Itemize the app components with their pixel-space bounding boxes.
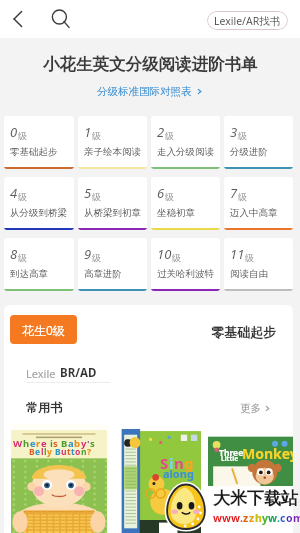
staticText: w bbox=[231, 511, 240, 525]
staticText: w bbox=[213, 511, 222, 525]
staticText: 级 bbox=[92, 130, 101, 141]
staticText: 0 bbox=[10, 123, 18, 141]
staticText: Little bbox=[221, 454, 239, 463]
staticText: 走入分级阅读 bbox=[157, 146, 214, 158]
staticText: 级 bbox=[165, 130, 174, 141]
button[interactable]: Back bbox=[4, 5, 32, 33]
staticText: l bbox=[44, 446, 47, 458]
staticText: 10 bbox=[157, 245, 172, 263]
button[interactable]: 5 bbox=[78, 177, 147, 230]
staticText: Lexile bbox=[26, 366, 56, 381]
staticText: i bbox=[169, 453, 174, 473]
staticText: 零基础起步 bbox=[211, 324, 276, 340]
staticText: 级 bbox=[92, 191, 101, 202]
staticText: ? bbox=[87, 446, 92, 458]
staticText: 级 bbox=[165, 191, 174, 202]
button[interactable]: 10 bbox=[151, 238, 220, 291]
staticText: 坐稳初章 bbox=[157, 207, 195, 219]
staticText: 9 bbox=[84, 245, 92, 263]
staticText: 级 bbox=[245, 252, 254, 263]
staticText: y bbox=[262, 511, 268, 525]
staticText: 级 bbox=[18, 252, 27, 263]
staticText: 小花生英文分级阅读进阶书单 bbox=[43, 54, 258, 75]
staticText: . bbox=[277, 511, 280, 525]
staticText: z bbox=[249, 511, 255, 525]
staticText: ' bbox=[87, 437, 90, 450]
staticText: 级 bbox=[172, 252, 181, 263]
button[interactable]: S bbox=[117, 429, 201, 533]
staticText bbox=[52, 446, 55, 458]
staticText: B bbox=[61, 437, 68, 450]
staticText: 5 bbox=[84, 184, 92, 202]
staticText: 级 bbox=[238, 130, 247, 141]
button[interactable]: 1 bbox=[78, 116, 147, 169]
staticText: 分级进阶 bbox=[230, 146, 268, 158]
button[interactable]: W bbox=[11, 424, 107, 533]
staticText: a bbox=[68, 437, 74, 450]
button[interactable]: 花生0级 bbox=[10, 315, 77, 344]
staticText: y bbox=[47, 446, 52, 458]
staticText: along bbox=[163, 466, 194, 481]
staticText: 到达高章 bbox=[10, 268, 48, 280]
staticText: 级 bbox=[92, 252, 101, 263]
staticText: m bbox=[293, 511, 300, 525]
staticText: e bbox=[30, 437, 36, 450]
staticText: 3 bbox=[230, 123, 238, 141]
staticText: z bbox=[243, 511, 249, 525]
staticText: s bbox=[53, 437, 58, 450]
staticText: 1 bbox=[84, 123, 92, 141]
button[interactable]: 0 bbox=[4, 116, 74, 169]
staticText: 7 bbox=[230, 184, 238, 202]
button[interactable]: Three bbox=[208, 435, 293, 533]
staticText: y bbox=[81, 437, 87, 450]
staticText: Lexile/AR找书 bbox=[214, 14, 281, 28]
staticText: 过关哈利波特 bbox=[157, 268, 214, 280]
staticText: b bbox=[74, 437, 81, 450]
button[interactable]: 3 bbox=[224, 116, 293, 169]
staticText: 级 bbox=[238, 191, 247, 202]
staticText: S bbox=[160, 453, 169, 473]
staticText: 花生0级 bbox=[22, 322, 65, 338]
staticText: 6 bbox=[157, 184, 165, 202]
button[interactable]: 7 bbox=[224, 177, 293, 230]
staticText bbox=[47, 437, 50, 450]
button[interactable]: 4 bbox=[4, 177, 74, 230]
staticText: Three bbox=[219, 447, 244, 459]
button[interactable]: 分级标准国际对照表 bbox=[97, 85, 203, 98]
staticText: B bbox=[29, 446, 35, 458]
button[interactable]: 11 bbox=[224, 238, 293, 291]
staticText: 大米下载站 bbox=[213, 488, 298, 509]
staticText: 从桥梁到初章 bbox=[84, 207, 141, 219]
staticText: s bbox=[90, 437, 95, 450]
staticText: h bbox=[23, 437, 30, 450]
staticText: 级 bbox=[18, 130, 27, 141]
staticText: t bbox=[67, 446, 71, 458]
staticText: 亲子绘本阅读 bbox=[84, 146, 141, 158]
staticText: e bbox=[35, 446, 41, 458]
staticText: r bbox=[36, 437, 41, 450]
staticText: 从分级到桥梁 bbox=[10, 207, 67, 219]
staticText: u bbox=[61, 446, 67, 458]
staticText: w bbox=[268, 511, 277, 525]
staticText: 常用书 bbox=[26, 400, 62, 415]
staticText: 8 bbox=[10, 245, 18, 263]
staticText: 分级标准国际对照表 bbox=[97, 85, 192, 98]
staticText: 更多 bbox=[240, 402, 261, 415]
button[interactable]: 更多 bbox=[240, 402, 271, 415]
staticText: c bbox=[280, 511, 286, 525]
button[interactable]: 2 bbox=[151, 116, 220, 169]
button[interactable]: Search bbox=[47, 5, 75, 33]
staticText bbox=[58, 437, 61, 450]
staticText: 高章进阶 bbox=[84, 268, 122, 280]
staticText: n bbox=[174, 453, 184, 473]
button[interactable]: 6 bbox=[151, 177, 220, 230]
button[interactable]: 8 bbox=[4, 238, 74, 291]
button[interactable]: Lexile/AR找书 bbox=[207, 11, 288, 30]
staticText: Monkey bbox=[242, 444, 293, 463]
staticText: e bbox=[41, 437, 47, 450]
staticText: 迈入中高章 bbox=[230, 207, 278, 219]
staticText: w bbox=[222, 511, 231, 525]
staticText: 11 bbox=[230, 245, 245, 263]
staticText: 零基础起步 bbox=[10, 146, 58, 158]
button[interactable]: 9 bbox=[78, 238, 147, 291]
